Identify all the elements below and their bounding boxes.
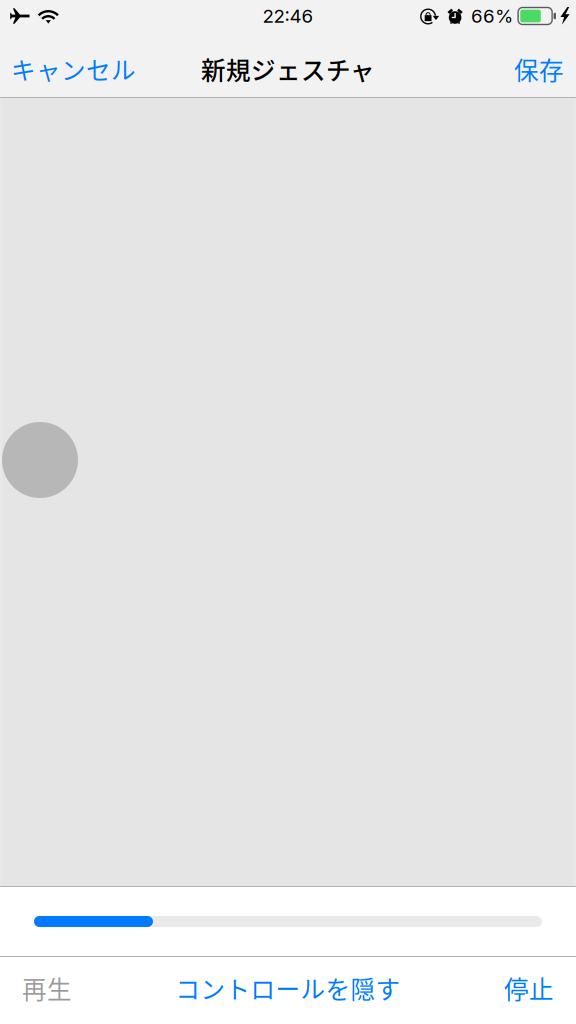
staticText: 新規ジェスチャ (201, 51, 375, 87)
button[interactable]: 停止 (482, 956, 576, 1024)
staticText: キャンセル (11, 51, 136, 87)
staticText: 22:46 (262, 5, 313, 27)
button[interactable]: 保存 (502, 40, 576, 98)
staticText: コントロールを隠す (175, 970, 400, 1006)
button[interactable]: コントロールを隠す (155, 956, 420, 1024)
button[interactable]: キャンセル (0, 40, 147, 98)
staticText: 停止 (504, 970, 554, 1006)
staticText: 再生 (22, 970, 72, 1006)
button[interactable]: 再生 (0, 956, 94, 1024)
staticText: 66% (471, 5, 513, 27)
staticText: 保存 (514, 51, 564, 87)
